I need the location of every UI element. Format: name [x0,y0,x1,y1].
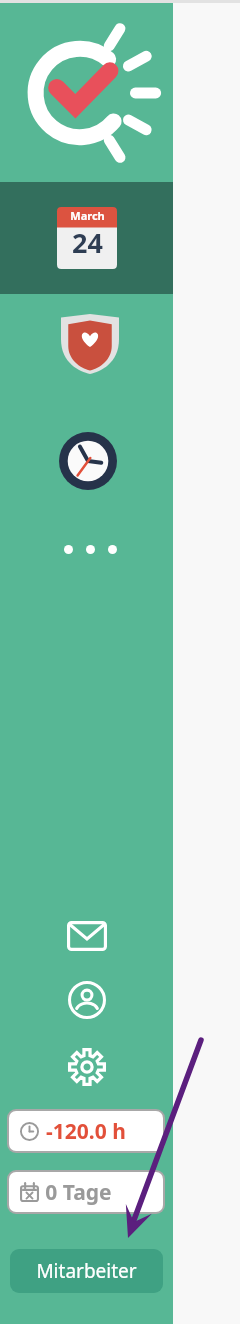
button[interactable]: Profile [55,974,119,1026]
button[interactable]: 0 Tage [9,1172,163,1212]
button[interactable]: Protection [54,308,126,380]
button[interactable]: Settings [55,1041,119,1093]
staticText: Mitarbeiter [36,1258,137,1284]
button[interactable]: -120.0 h [9,1111,163,1151]
button[interactable]: Time tracking [51,424,125,498]
button[interactable]: More [50,529,130,569]
button[interactable]: Calendar March 24 [0,182,173,294]
staticText: 24 [72,224,103,261]
button[interactable]: Mitarbeiter [10,1249,163,1293]
button[interactable]: App logo [0,3,173,182]
staticText: 0 Tage [45,1178,112,1207]
staticText: -120.0 h [46,1117,126,1146]
button[interactable]: Messages [55,912,119,960]
staticText: March [70,208,105,223]
